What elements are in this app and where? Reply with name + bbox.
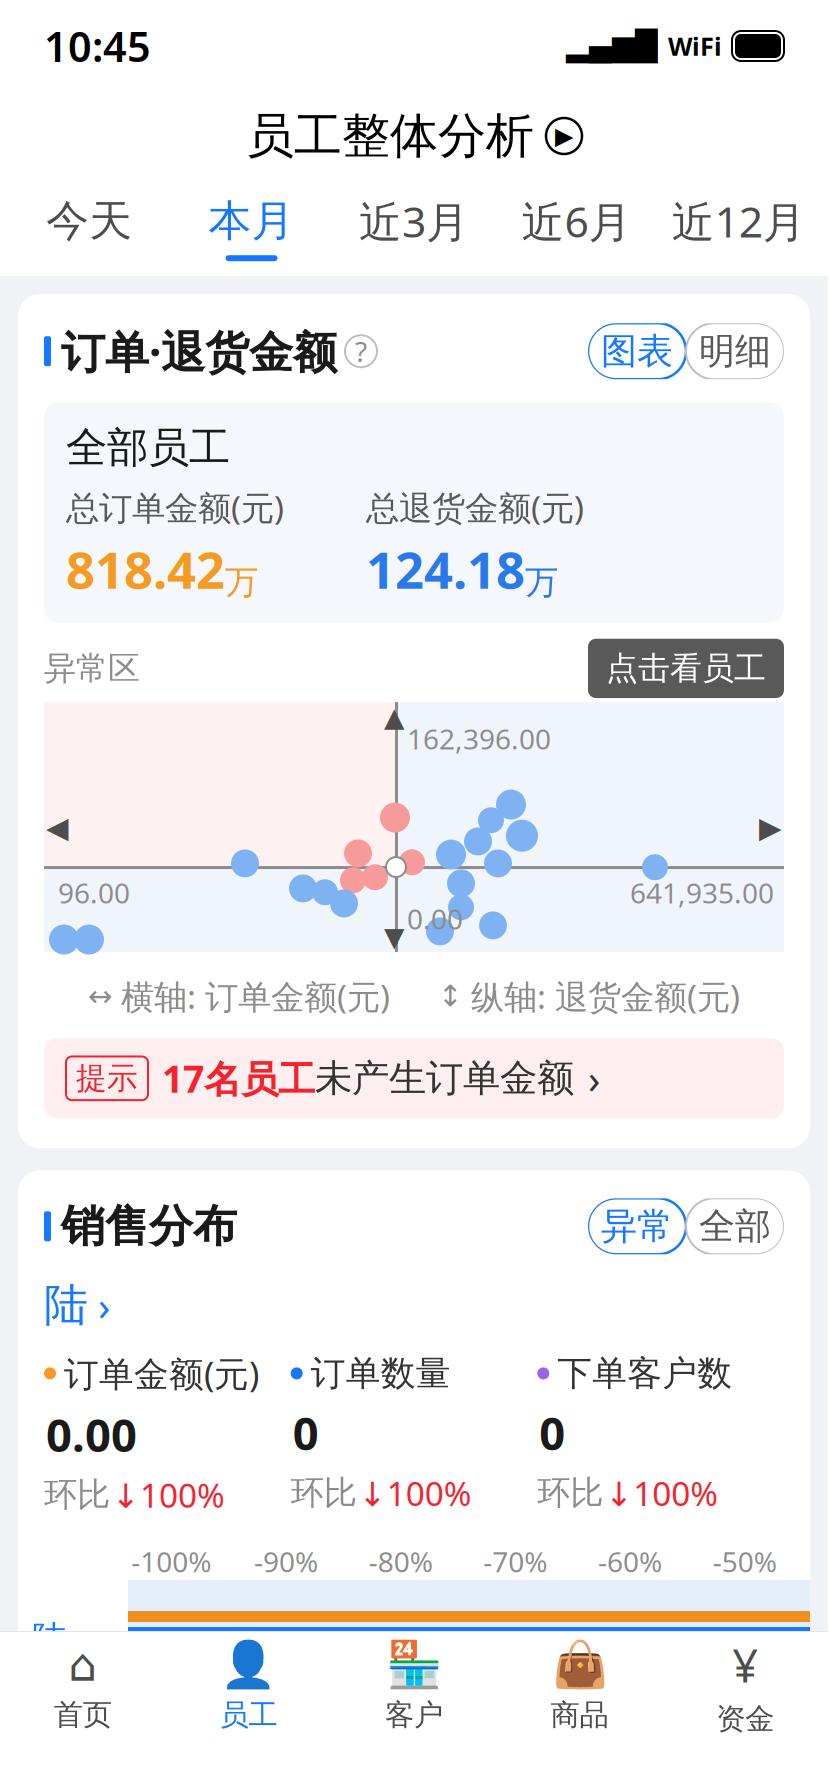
button[interactable]: 本月 — [170, 195, 333, 261]
staticText: ▶ — [555, 122, 573, 150]
staticText: 环比 — [291, 1472, 357, 1513]
staticText: 0.00 — [46, 1404, 137, 1465]
staticText: 96.00 — [58, 874, 130, 911]
staticText: ⌂ — [68, 1639, 97, 1691]
staticText: 下单客户数 — [557, 1352, 732, 1395]
staticText: 0 — [539, 1403, 565, 1463]
staticText: 员工 — [219, 1697, 277, 1733]
staticText: 订单·退货金额 — [61, 322, 337, 380]
staticText: 近6月 — [521, 193, 631, 249]
staticText: 提示 — [76, 1059, 138, 1097]
staticText: 17名员工 — [162, 1053, 315, 1103]
staticText: 异常区 — [44, 649, 140, 688]
staticText: 异常 — [601, 1204, 673, 1248]
staticText: 今天 — [46, 195, 132, 247]
button[interactable]: 播放讲解 — [546, 118, 582, 154]
button[interactable]: 今天 — [8, 195, 170, 261]
button[interactable]: 近6月 — [495, 193, 658, 263]
staticText: 销售分布 — [61, 1199, 237, 1253]
staticText: 万 — [225, 562, 258, 603]
button[interactable]: 近3月 — [333, 193, 495, 263]
staticText: ↓100% — [605, 1471, 718, 1515]
staticText: › — [98, 1279, 110, 1332]
staticText: 124.18 — [366, 535, 525, 603]
staticText: 威威虎 — [32, 1714, 102, 1792]
staticText: ▼ — [384, 922, 405, 952]
staticText: 本月 — [209, 195, 295, 247]
staticText: 陆 — [44, 1278, 88, 1332]
staticText: ◀ — [46, 811, 69, 844]
staticText: 总退货金额(元) — [366, 485, 584, 529]
staticText: 近12月 — [672, 193, 806, 249]
staticText: -60% — [598, 1543, 662, 1580]
staticText: WiFi — [668, 29, 722, 63]
staticText: 641,935.00 — [630, 874, 774, 911]
staticText: 10:45 — [44, 19, 151, 73]
staticText: -90% — [254, 1543, 318, 1580]
button[interactable]: 🏪 — [331, 1631, 497, 1741]
button[interactable]: 提示 — [44, 1038, 784, 1118]
staticText: -100% — [131, 1543, 211, 1580]
staticText: 818.42 — [66, 535, 225, 603]
staticText: 0.00 — [407, 900, 463, 937]
staticText: ▂▄▆█ — [566, 29, 658, 63]
staticText: ? — [355, 333, 367, 370]
staticText: 陆 — [32, 1618, 67, 1660]
staticText: ↔ — [88, 979, 113, 1013]
staticText: 0 — [293, 1403, 319, 1463]
staticText: 首页 — [54, 1697, 112, 1733]
staticText: -80% — [369, 1543, 433, 1580]
staticText: ↓100% — [112, 1473, 225, 1517]
staticText: ↕ — [438, 979, 463, 1013]
button[interactable]: 近12月 — [658, 193, 820, 263]
button[interactable]: ⌂ — [0, 1631, 166, 1741]
button[interactable]: 异常 — [588, 1198, 686, 1254]
staticText: 环比 — [537, 1472, 603, 1513]
staticText: 👤 — [220, 1639, 276, 1691]
staticText: 近3月 — [359, 193, 469, 249]
staticText: 横轴: 订单金额(元) — [121, 974, 390, 1018]
staticText: ↓100% — [359, 1471, 472, 1515]
staticText: 图表 — [601, 329, 673, 373]
staticText: 全部员工 — [66, 422, 230, 473]
staticText: 订单金额(元) — [64, 1350, 259, 1396]
staticText: 明细 — [699, 329, 771, 373]
staticText: 👜 — [552, 1639, 608, 1691]
button[interactable]: 说明 — [345, 335, 377, 367]
button[interactable]: 👜 — [497, 1631, 662, 1741]
staticText: 商品 — [551, 1697, 609, 1733]
staticText: ▶ — [759, 811, 782, 844]
staticText: 万 — [525, 562, 558, 603]
staticText: 未产生订单金额 — [315, 1055, 574, 1101]
button[interactable]: 陆 — [44, 1278, 784, 1332]
staticText: 纵轴: 退货金额(元) — [471, 974, 740, 1018]
staticText: 162,396.00 — [407, 720, 551, 757]
button[interactable]: ¥ — [662, 1627, 828, 1745]
staticText: 客户 — [385, 1697, 443, 1733]
staticText: ¥ — [732, 1635, 758, 1695]
staticText: ▲ — [384, 702, 405, 732]
staticText: 点击看员工 — [606, 649, 766, 688]
button[interactable]: 全部 — [686, 1198, 784, 1254]
staticText: 全部 — [699, 1204, 771, 1248]
button[interactable]: 👤 — [166, 1631, 331, 1741]
staticText: 🏪 — [386, 1639, 442, 1691]
staticText: 总订单金额(元) — [66, 485, 284, 529]
staticText: -50% — [713, 1543, 777, 1580]
staticText: › — [588, 1052, 600, 1105]
staticText: 环比 — [44, 1474, 110, 1515]
staticText: -70% — [483, 1543, 547, 1580]
button[interactable]: 图表 — [588, 323, 686, 379]
staticText: 资金 — [716, 1701, 774, 1737]
button[interactable]: 明细 — [686, 323, 784, 379]
staticText: 订单数量 — [311, 1352, 451, 1395]
staticText: 员工整体分析 — [246, 106, 534, 165]
